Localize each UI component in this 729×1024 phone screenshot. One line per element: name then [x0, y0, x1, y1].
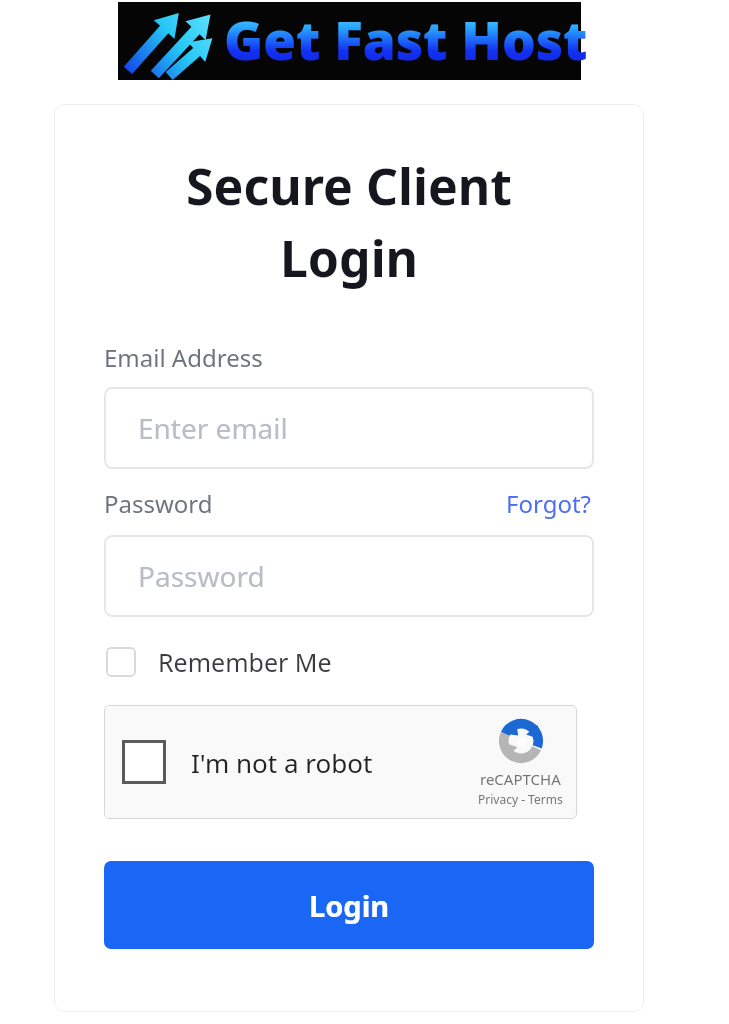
staticText: Email Address [104, 341, 263, 374]
staticText: Forgot? [506, 487, 592, 520]
staticText: Privacy - Terms [478, 791, 563, 807]
button[interactable]: Login [104, 861, 594, 949]
staticText: Get Fast Host [224, 3, 588, 75]
staticText: I'm not a robot [191, 745, 373, 780]
button[interactable]: Forgot? [504, 485, 594, 522]
staticText: Login [309, 886, 390, 925]
staticText: Password [138, 557, 265, 595]
button[interactable]: Enter email [104, 387, 594, 469]
button[interactable]: Remember Me [104, 641, 334, 683]
other: reCAPTCHA logo [497, 717, 545, 765]
staticText: Secure Client Login [104, 152, 594, 291]
staticText: Remember Me [158, 645, 332, 679]
staticText: Password [104, 487, 213, 520]
button[interactable]: Password [104, 535, 594, 617]
staticText: Enter email [138, 409, 288, 447]
staticText: reCAPTCHA [480, 769, 561, 789]
button[interactable]: I'm not a robot [118, 736, 377, 788]
